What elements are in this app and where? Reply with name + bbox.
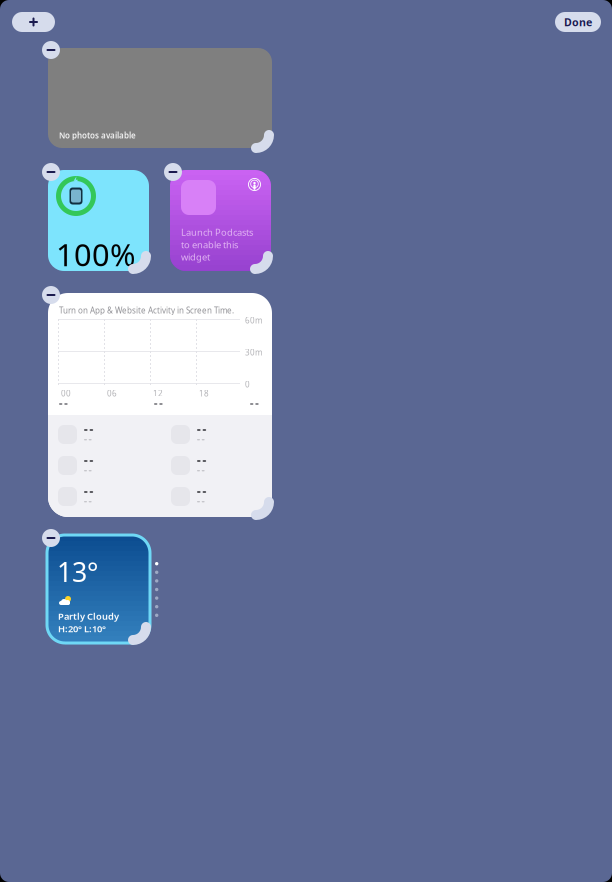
button[interactable]: Podcasts widget (170, 170, 271, 271)
staticText: to enable this (181, 238, 238, 251)
button[interactable]: Done (555, 12, 601, 32)
staticText: 00 (61, 388, 71, 399)
staticText: Done (564, 15, 592, 29)
staticText: Partly Cloudy (58, 610, 119, 622)
staticText: H:20° L:10° (58, 622, 106, 635)
button[interactable]: Weather widget (48, 536, 149, 642)
staticText: 100% (56, 234, 135, 275)
button[interactable]: Photos widget (48, 48, 272, 148)
staticText: No photos available (59, 130, 136, 141)
button[interactable]: Remove widget (164, 163, 182, 181)
staticText: 18 (199, 388, 209, 399)
staticText: widget (181, 251, 210, 263)
staticText: 06 (107, 388, 117, 399)
staticText: 60m (245, 315, 262, 326)
staticText: Launch Podcasts (181, 226, 253, 238)
staticText: 13° (57, 554, 98, 589)
button[interactable]: Remove widget (42, 163, 60, 181)
staticText: Turn on App & Website Activity in Screen… (59, 305, 234, 316)
button[interactable]: Add widget (12, 12, 55, 32)
button[interactable]: Remove widget (42, 41, 60, 59)
button[interactable]: Remove widget (42, 529, 60, 547)
button[interactable]: Screen Time widget (48, 293, 272, 517)
staticText: 12 (153, 388, 163, 399)
staticText: 0 (245, 379, 250, 390)
button[interactable]: Batteries widget (48, 170, 149, 271)
staticText: 30m (245, 347, 262, 358)
button[interactable]: Remove widget (42, 286, 60, 304)
